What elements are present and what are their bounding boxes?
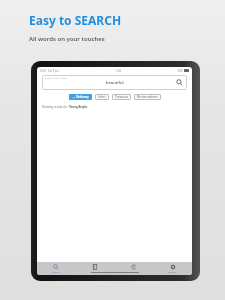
staticText: Library (91, 271, 99, 274)
staticText: Thesaurus (115, 95, 128, 99)
staticText: Young Beglin (69, 105, 88, 109)
button[interactable]: Mirriam-webster (134, 94, 161, 100)
staticText: SEARCH FOR A WORD (45, 77, 68, 80)
staticText: Settings (168, 271, 177, 274)
staticText: Select (98, 95, 106, 99)
staticText: 86% (178, 69, 183, 72)
staticText: History (130, 271, 138, 274)
button[interactable]: Search (176, 79, 183, 86)
staticText: beautiful (106, 80, 124, 85)
button[interactable]: Library (75, 262, 114, 275)
button[interactable]: Search (37, 262, 75, 275)
staticText: results for (54, 105, 69, 109)
button[interactable]: Settings (153, 262, 192, 275)
button[interactable]: Dictionary (69, 94, 92, 100)
button[interactable]: History (114, 262, 153, 275)
staticText: Mirriam-webster (137, 95, 158, 99)
staticText: Search (52, 271, 60, 274)
staticText: All words on your touches (29, 35, 105, 43)
staticText: Showing (42, 105, 54, 109)
staticText: 10:41 Tue 8 Jun (40, 69, 59, 72)
button[interactable]: SEARCH FOR A WORD (42, 75, 187, 90)
button[interactable]: Thesaurus (112, 94, 131, 100)
staticText: Dictionary (76, 95, 89, 99)
button[interactable]: Select (95, 94, 109, 100)
staticText: Easy to SEARCH (29, 12, 122, 28)
staticText: 1:04 (116, 69, 121, 72)
